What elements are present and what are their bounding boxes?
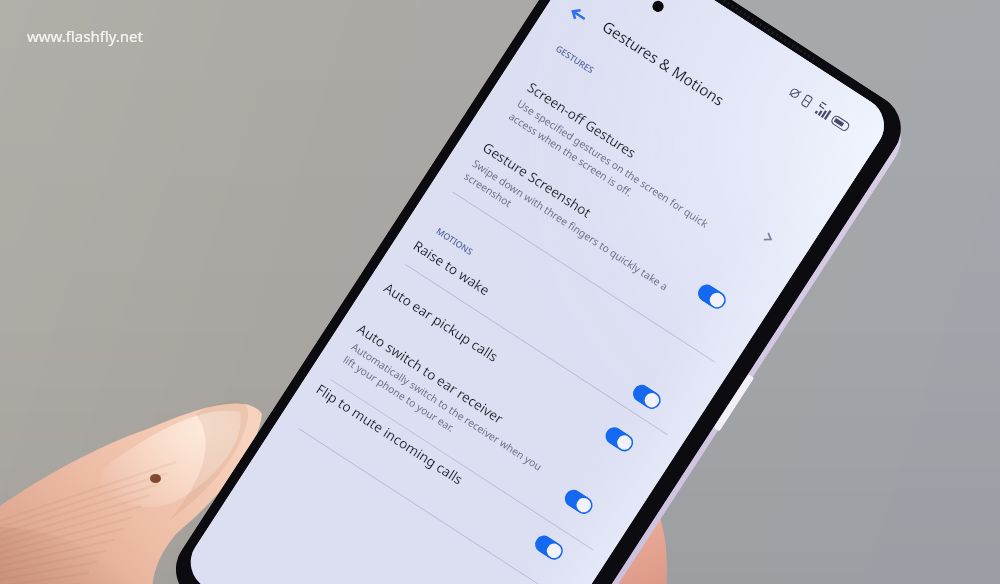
staticText: Swipe down with three fingers to quickly… [461, 156, 671, 307]
staticText: GESTURES [554, 42, 596, 76]
staticText: Use specified gestures on the screen for… [506, 96, 711, 244]
staticText: Raise to wake [410, 236, 494, 300]
staticText: Auto switch to ear receiver [354, 319, 507, 428]
button[interactable]: Auto switch to ear receiver [346, 319, 593, 495]
button[interactable]: Auto ear pickup calls [373, 278, 619, 454]
staticText: Auto ear pickup calls [380, 278, 501, 366]
staticText: Automatically switch to the receiver whe… [340, 339, 545, 487]
button[interactable]: Flip to mute incoming calls [305, 380, 552, 555]
staticText: Screen-off Gestures [524, 78, 640, 162]
button[interactable]: Toggle on [695, 281, 729, 312]
staticText: www.flashfly.net [27, 26, 143, 46]
button[interactable]: Screen-off Gestures [506, 78, 770, 274]
button[interactable]: Raise to wake [402, 236, 649, 411]
button[interactable]: Gesture Screenshot [461, 138, 725, 334]
button[interactable]: Back [561, 0, 596, 33]
staticText: Flip to mute incoming calls [313, 380, 467, 489]
staticText: MOTIONS [434, 225, 476, 258]
staticText: Gesture Screenshot [479, 138, 595, 222]
staticText: Gestures & Motions [598, 16, 729, 111]
button[interactable]: Toggle on [532, 532, 566, 563]
button[interactable]: Toggle on [630, 381, 664, 412]
button[interactable]: Toggle on [561, 486, 596, 517]
button[interactable]: Toggle on [602, 424, 637, 455]
other: Power button [713, 374, 754, 432]
